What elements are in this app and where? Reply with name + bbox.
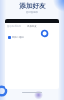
button[interactable]: 我的二维码: [5, 35, 59, 40]
staticText: 我的二维码: [12, 36, 24, 39]
staticText: 微信号/手机号: [7, 25, 21, 28]
staticText: 添加好友: [27, 25, 37, 28]
staticText: 添加好友: [19, 2, 46, 10]
staticText: 面对面建群: [26, 11, 38, 14]
